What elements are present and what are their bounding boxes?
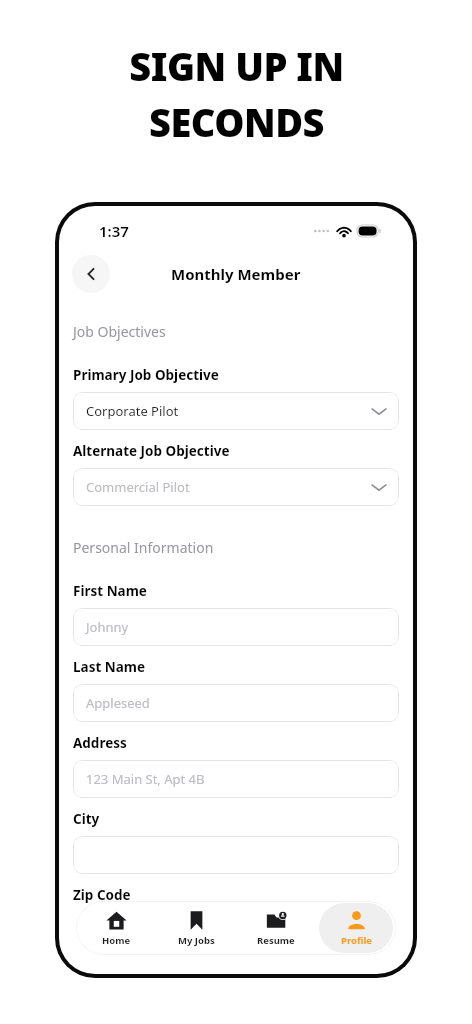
staticText: SIGN UP IN (129, 40, 344, 92)
button[interactable]: Resume (239, 903, 313, 953)
button[interactable]: Commercial Pilot (73, 468, 399, 506)
button[interactable]: Corporate Pilot (73, 392, 399, 430)
staticText: Home (102, 934, 131, 947)
button[interactable]: Back (72, 255, 110, 293)
staticText: Commercial Pilot (86, 478, 190, 496)
staticText: Address (73, 734, 127, 752)
staticText: 1:37 (99, 221, 129, 241)
button[interactable]: Johnny (73, 608, 399, 646)
button[interactable]: My Jobs (159, 903, 233, 953)
staticText: Resume (257, 934, 295, 947)
staticText: Monthly Member (171, 264, 301, 284)
staticText: 123 Main St, Apt 4B (86, 770, 205, 788)
staticText: Corporate Pilot (86, 402, 179, 420)
staticText: Profile (341, 934, 372, 947)
button[interactable]: Profile (319, 903, 393, 953)
button[interactable]: Home (79, 903, 153, 953)
staticText: My Jobs (178, 934, 215, 947)
staticText: City (73, 810, 100, 828)
staticText: Appleseed (86, 694, 150, 712)
staticText: Alternate Job Objective (73, 442, 230, 460)
staticText: Zip Code (73, 886, 131, 904)
button[interactable]: Appleseed (73, 684, 399, 722)
staticText: Last Name (73, 658, 146, 676)
staticText: First Name (73, 582, 147, 600)
button[interactable] (73, 836, 399, 874)
staticText: Johnny (86, 618, 129, 636)
staticText: SECONDS (149, 96, 324, 148)
button[interactable]: 123 Main St, Apt 4B (73, 760, 399, 798)
staticText: Personal Information (73, 538, 214, 557)
staticText: Primary Job Objective (73, 366, 219, 384)
staticText: Job Objectives (73, 322, 166, 341)
